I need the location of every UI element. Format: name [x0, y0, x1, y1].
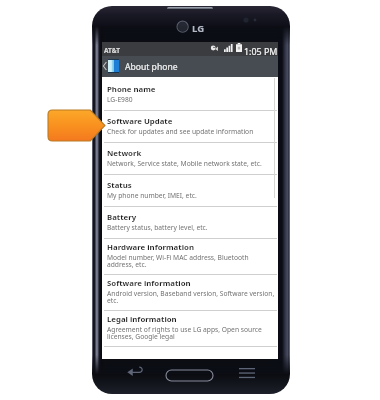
button[interactable]: Home [166, 370, 213, 381]
button[interactable]: Hardware information [102, 239, 278, 275]
staticText: Model number, Wi-Fi MAC address, Bluetoo… [107, 253, 249, 269]
staticText: Battery [107, 212, 137, 223]
button[interactable]: About phone [102, 56, 278, 77]
button[interactable]: Legal information [102, 311, 278, 347]
staticText: LG [192, 22, 205, 35]
staticText: Check for updates and see update informa… [107, 127, 254, 136]
button[interactable]: Menu [239, 368, 255, 379]
staticText: Hardware information [107, 242, 194, 253]
staticText: Network [107, 148, 142, 159]
staticText: Phone name [107, 84, 156, 95]
button[interactable]: Battery [102, 207, 278, 239]
staticText: Software information [107, 278, 191, 289]
button[interactable]: Status [102, 175, 278, 207]
button[interactable]: Software Update [102, 111, 278, 143]
staticText: 1:05 PM [244, 45, 278, 57]
staticText: Agreement of rights to use LG apps, Open… [107, 325, 262, 341]
staticText: Status [107, 180, 132, 191]
staticText: Android version, Baseband version, Softw… [107, 289, 275, 305]
staticText: Software Update [107, 116, 173, 127]
button[interactable]: Back [127, 367, 144, 378]
staticText: Legal information [107, 314, 177, 325]
staticText: Battery status, battery level, etc. [107, 223, 208, 232]
button[interactable]: Software information [102, 275, 278, 311]
staticText: LG-E980 [107, 95, 133, 104]
button[interactable]: Network [102, 143, 278, 175]
staticText: Network, Service state, Mobile network s… [107, 159, 262, 168]
button[interactable]: Phone name [102, 79, 278, 111]
staticText: About phone [125, 61, 178, 73]
staticText: My phone number, IMEI, etc. [107, 191, 197, 200]
staticText: AT&T [104, 46, 120, 55]
